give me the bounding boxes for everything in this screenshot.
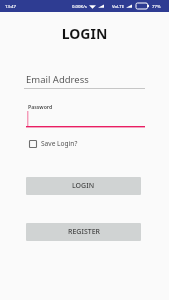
staticText: LOGIN	[0, 24, 169, 43]
button[interactable]: Save Login?	[29, 139, 78, 148]
staticText: Email Address	[26, 73, 89, 86]
staticText: Password	[28, 103, 53, 110]
staticText: 0.00K/s	[72, 3, 87, 9]
button[interactable]: LOGIN	[26, 177, 141, 195]
staticText: VoLTE	[112, 3, 125, 9]
staticText: 77%	[152, 3, 161, 9]
staticText: LOGIN	[72, 181, 95, 191]
staticText: REGISTER	[68, 227, 100, 237]
staticText: 13:47	[5, 3, 16, 9]
button[interactable]: REGISTER	[26, 223, 141, 241]
staticText: Save Login?	[41, 139, 78, 148]
